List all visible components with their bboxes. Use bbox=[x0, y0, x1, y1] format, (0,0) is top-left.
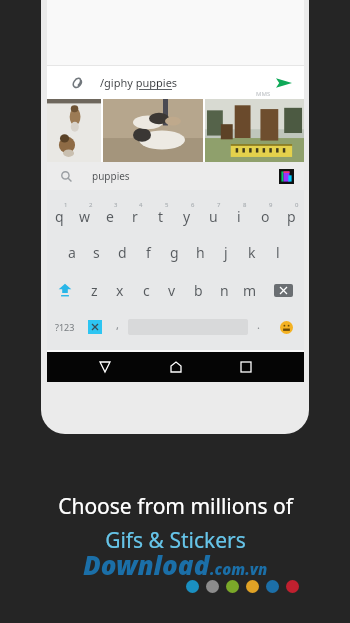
staticText: t bbox=[158, 207, 164, 226]
staticText: MMS bbox=[256, 90, 271, 98]
staticText: Gifs & Stickers bbox=[105, 526, 246, 555]
staticText: e bbox=[106, 207, 114, 226]
staticText: .com.vn bbox=[210, 559, 268, 579]
button[interactable]: f bbox=[135, 233, 161, 271]
button[interactable]: Change language bbox=[82, 309, 107, 345]
button[interactable]: d bbox=[109, 233, 135, 271]
button[interactable]: m bbox=[237, 271, 263, 309]
button[interactable]: x bbox=[107, 271, 133, 309]
staticText: Choose from millions of bbox=[58, 492, 293, 521]
staticText: 0 bbox=[295, 201, 299, 209]
staticText: h bbox=[196, 243, 205, 262]
staticText: z bbox=[91, 281, 98, 300]
button[interactable]: v bbox=[159, 271, 185, 309]
staticText: k bbox=[248, 243, 256, 262]
staticText: 9 bbox=[269, 201, 273, 209]
button[interactable]: Attach bbox=[65, 71, 89, 95]
button[interactable]: k bbox=[239, 233, 265, 271]
button[interactable]: j bbox=[213, 233, 239, 271]
staticText: 6 bbox=[191, 201, 195, 209]
staticText: u bbox=[209, 207, 218, 226]
button[interactable]: a bbox=[59, 233, 84, 271]
staticText: j bbox=[224, 243, 228, 262]
staticText: 3 bbox=[114, 201, 118, 209]
button[interactable]: 7 bbox=[200, 195, 226, 233]
staticText: , bbox=[116, 317, 119, 332]
staticText: ?123 bbox=[55, 321, 75, 333]
button[interactable]: c bbox=[133, 271, 159, 309]
staticText: b bbox=[194, 281, 203, 300]
button[interactable]: n bbox=[211, 271, 237, 309]
button[interactable]: z bbox=[82, 271, 107, 309]
staticText: i bbox=[237, 207, 241, 226]
button[interactable]: Home bbox=[163, 354, 189, 380]
button[interactable]: l bbox=[265, 233, 291, 271]
staticText: 8 bbox=[243, 201, 247, 209]
staticText: w bbox=[79, 207, 91, 226]
button[interactable]: g bbox=[161, 233, 187, 271]
button[interactable]: 8 bbox=[226, 195, 252, 233]
staticText: n bbox=[220, 281, 229, 300]
button[interactable]: 6 bbox=[174, 195, 200, 233]
button[interactable]: 2 bbox=[72, 195, 97, 233]
button[interactable]: Emoji bbox=[269, 309, 304, 345]
staticText: o bbox=[261, 207, 270, 226]
button[interactable]: Recents bbox=[233, 354, 259, 380]
staticText: . bbox=[257, 317, 260, 332]
button[interactable]: 0 bbox=[278, 195, 304, 233]
button[interactable]: h bbox=[187, 233, 213, 271]
staticText: puppies bbox=[92, 169, 130, 183]
staticText: Download bbox=[83, 547, 210, 582]
staticText: 1 bbox=[64, 201, 68, 209]
button[interactable]: Shift bbox=[47, 271, 82, 309]
staticText: m bbox=[243, 281, 257, 300]
button[interactable] bbox=[103, 99, 203, 162]
button[interactable]: Backspace bbox=[263, 271, 304, 309]
button[interactable]: 5 bbox=[148, 195, 174, 233]
button[interactable]: GIPHY bbox=[279, 169, 294, 184]
button[interactable]: puppies bbox=[47, 162, 304, 190]
staticText: 4 bbox=[139, 201, 143, 209]
staticText: q bbox=[55, 207, 64, 226]
button[interactable]: Attach bbox=[47, 66, 304, 99]
staticText: 7 bbox=[217, 201, 221, 209]
staticText: 2 bbox=[89, 201, 93, 209]
staticText: d bbox=[118, 243, 127, 262]
staticText: c bbox=[143, 281, 150, 300]
staticText: /giphy puppies bbox=[100, 75, 178, 90]
staticText: s bbox=[93, 243, 100, 262]
button[interactable]: b bbox=[185, 271, 211, 309]
staticText: a bbox=[68, 243, 76, 262]
staticText: g bbox=[170, 243, 179, 262]
button[interactable]: , bbox=[107, 309, 128, 345]
button[interactable]: 9 bbox=[252, 195, 278, 233]
staticText: 5 bbox=[165, 201, 169, 209]
button[interactable]: s bbox=[84, 233, 109, 271]
staticText: f bbox=[146, 243, 151, 262]
staticText: p bbox=[287, 207, 296, 226]
button[interactable]: 1 bbox=[47, 195, 72, 233]
button[interactable]: ?123 bbox=[47, 309, 82, 345]
staticText: v bbox=[168, 281, 176, 300]
staticText: l bbox=[276, 243, 280, 262]
staticText: r bbox=[132, 207, 138, 226]
button[interactable] bbox=[205, 99, 304, 162]
staticText: y bbox=[183, 207, 191, 226]
button[interactable]: Back bbox=[92, 354, 118, 380]
staticText: x bbox=[116, 281, 124, 300]
button[interactable] bbox=[47, 99, 101, 162]
button[interactable]: Send bbox=[272, 71, 296, 95]
button[interactable]: 4 bbox=[122, 195, 148, 233]
button[interactable]: 3 bbox=[97, 195, 122, 233]
button[interactable]: . bbox=[248, 309, 269, 345]
